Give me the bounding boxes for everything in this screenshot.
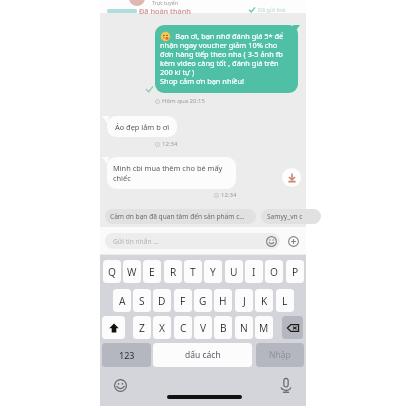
staticText: 12:34 [162, 140, 178, 148]
staticText: G [199, 294, 207, 308]
button[interactable]: L [276, 289, 294, 312]
button[interactable]: V [194, 316, 212, 339]
button[interactable]: E [143, 260, 161, 283]
button[interactable]: R [164, 260, 182, 283]
button[interactable]: Z [133, 316, 151, 339]
button[interactable]: F [174, 289, 192, 312]
staticText: K [261, 294, 268, 308]
staticText: L [282, 294, 288, 308]
staticText: Cảm ơn bạn đã quan tâm đến sản phẩm c... [110, 212, 245, 221]
staticText: N [240, 321, 248, 335]
button[interactable]: B [214, 316, 232, 339]
staticText: Z [139, 321, 145, 335]
button[interactable]: Mình cbi mua thêm cho bé mấy chiếc [107, 157, 236, 189]
staticText: Nhập [269, 349, 291, 361]
staticText: D [158, 294, 166, 308]
staticText: Bạn ơi, bạn nhớ đánh giá 5* để nhận ngay… [160, 31, 284, 87]
staticText: F [180, 294, 186, 308]
button[interactable]: H [214, 289, 232, 312]
staticText: Samyy_vn c [267, 212, 303, 221]
button[interactable]: T [184, 260, 202, 283]
staticText: U [230, 265, 238, 279]
staticText: X [159, 321, 165, 335]
staticText: 123 [119, 349, 135, 361]
staticText: Hôm qua 20:15 [162, 97, 205, 105]
staticText: O [270, 265, 278, 279]
staticText: P [292, 265, 299, 279]
button[interactable]: dấu cách [153, 343, 252, 367]
staticText: Gửi tin nhắn ... [113, 237, 159, 246]
button[interactable]: P [286, 260, 304, 283]
staticText: I [252, 265, 256, 279]
staticText: S [139, 294, 145, 308]
staticText: dấu cách [185, 349, 221, 361]
staticText: Đã hoàn thành [139, 6, 191, 16]
button[interactable]: Y [204, 260, 222, 283]
staticText: R [170, 265, 177, 279]
button[interactable]: Download [282, 168, 301, 187]
button[interactable]: Emoji keyboard [113, 378, 127, 392]
button[interactable]: K [255, 289, 273, 312]
button[interactable]: G [194, 289, 212, 312]
button[interactable]: Bạn ơi, bạn nhớ đánh giá 5* để nhận ngay… [155, 25, 298, 93]
staticText: J [243, 294, 246, 308]
staticText: Áo đẹp lắm b ơi [115, 122, 170, 132]
button[interactable]: Backspace [282, 316, 303, 339]
button[interactable]: N [235, 316, 253, 339]
button[interactable]: Nhập [256, 343, 304, 367]
button[interactable]: Voice input [279, 376, 292, 394]
staticText: Q [108, 265, 116, 279]
button[interactable]: W [123, 260, 141, 283]
button[interactable]: C [174, 316, 192, 339]
button[interactable]: A [113, 289, 131, 312]
staticText: E [149, 265, 155, 279]
staticText: 12:34 [221, 191, 237, 199]
button[interactable]: Shift [102, 316, 125, 339]
button[interactable]: 123 [102, 343, 151, 367]
staticText: A [119, 294, 126, 308]
staticText: W [127, 265, 137, 279]
button[interactable]: I [245, 260, 263, 283]
staticText: T [190, 265, 196, 279]
staticText: Đã gửi link [258, 6, 286, 13]
button[interactable]: S [133, 289, 151, 312]
staticText: Y [210, 265, 216, 279]
button[interactable]: Add attachment [287, 235, 300, 248]
button[interactable]: Emoji [265, 235, 278, 248]
staticText: Mình cbi mua thêm cho bé mấy chiếc [113, 163, 223, 183]
button[interactable]: Q [103, 260, 121, 283]
button[interactable]: Áo đẹp lắm b ơi [107, 116, 177, 137]
staticText: Trực tuyến [152, 0, 178, 6]
button[interactable]: X [153, 316, 171, 339]
button[interactable]: U [225, 260, 243, 283]
staticText: M [259, 321, 269, 335]
button[interactable]: D [153, 289, 171, 312]
button[interactable]: Gửi tin nhắn ... [105, 233, 280, 249]
staticText: V [200, 321, 207, 335]
staticText: B [220, 321, 227, 335]
button[interactable]: Cảm ơn bạn đã quan tâm đến sản phẩm c... [105, 209, 256, 224]
button[interactable]: O [265, 260, 283, 283]
button[interactable]: J [235, 289, 253, 312]
button[interactable]: Samyy_vn c [261, 209, 321, 224]
staticText: H [219, 294, 227, 308]
staticText: C [180, 321, 187, 335]
button[interactable]: M [255, 316, 273, 339]
